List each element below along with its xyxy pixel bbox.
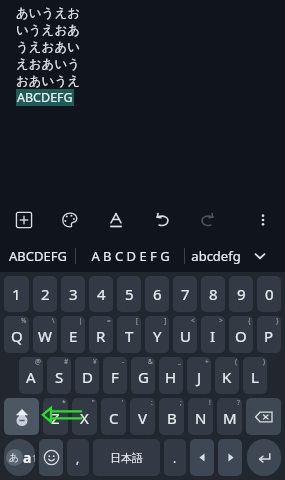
button[interactable]: : — [130, 398, 155, 435]
staticText: あいうえお — [16, 5, 80, 21]
staticText: { — [248, 316, 251, 325]
staticText: K — [222, 367, 232, 387]
button[interactable]: + — [187, 357, 211, 394]
button[interactable]: Move cursor left — [190, 439, 214, 476]
staticText: < — [191, 316, 195, 325]
button[interactable]: @ — [19, 357, 43, 394]
button[interactable]: * — [43, 398, 68, 435]
button[interactable]: Undo — [148, 206, 176, 234]
button[interactable]: < — [173, 316, 197, 353]
staticText: % — [21, 316, 27, 325]
button[interactable]: 5 — [117, 276, 141, 312]
button[interactable]: - — [103, 357, 127, 394]
button[interactable]: 0 — [257, 276, 281, 312]
button[interactable]: Redo — [194, 206, 222, 234]
button[interactable]: _ — [159, 357, 183, 394]
button[interactable]: ' — [101, 398, 126, 435]
button[interactable]: Expand suggestions — [247, 240, 273, 272]
staticText: いうえおあ — [16, 22, 80, 38]
button[interactable]: 8 — [201, 276, 225, 312]
button[interactable]: \ — [33, 316, 57, 353]
button[interactable]: | — [61, 316, 85, 353]
button[interactable]: 日本語 — [93, 439, 160, 476]
staticText: 2 — [41, 284, 50, 304]
button[interactable]: 1 — [4, 276, 29, 312]
button[interactable]: ) — [243, 357, 267, 394]
button[interactable]: Enter — [247, 439, 281, 476]
staticText: \ — [52, 316, 55, 325]
staticText: A — [26, 367, 36, 387]
button[interactable]: > — [201, 316, 225, 353]
button[interactable]: ? — [217, 398, 242, 435]
staticText: ABCDEFG — [9, 247, 67, 265]
staticText: M — [223, 408, 237, 428]
button[interactable]: 4 — [89, 276, 113, 312]
button[interactable]: } — [257, 316, 281, 353]
staticText: , — [76, 450, 80, 466]
staticText: T — [125, 326, 134, 346]
staticText: | — [79, 316, 83, 325]
button[interactable]: 9 — [229, 276, 253, 312]
staticText: X — [80, 408, 89, 428]
button[interactable]: { — [229, 316, 253, 353]
staticText: R — [96, 326, 106, 346]
staticText: ' — [122, 398, 124, 407]
button[interactable]: abcdefg — [185, 240, 247, 272]
staticText: Q — [11, 326, 23, 346]
staticText: ] — [164, 316, 167, 325]
button[interactable]: = — [89, 316, 113, 353]
button[interactable]: More options — [249, 206, 277, 234]
button[interactable]: " — [72, 398, 97, 435]
button[interactable]: 7 — [173, 276, 197, 312]
button[interactable]: ! — [188, 398, 213, 435]
staticText: @ — [35, 357, 41, 366]
button[interactable]: Emoji — [39, 439, 63, 476]
button[interactable]: Insert — [10, 206, 38, 234]
button[interactable]: Text format — [102, 206, 130, 234]
staticText: } — [276, 316, 279, 325]
button[interactable]: [ — [117, 316, 141, 353]
staticText: V — [138, 408, 148, 428]
staticText: C — [109, 408, 119, 428]
staticText: 8 — [209, 284, 218, 304]
button[interactable]: & — [131, 357, 155, 394]
button[interactable]: # — [47, 357, 71, 394]
staticText: 9 — [237, 284, 246, 304]
button[interactable]: ( — [215, 357, 239, 394]
button[interactable]: ; — [159, 398, 184, 435]
staticText: N — [195, 408, 207, 428]
staticText: ; — [180, 398, 182, 407]
staticText: D — [82, 367, 93, 387]
staticText: ( — [235, 357, 237, 366]
button[interactable]: ] — [145, 316, 169, 353]
staticText: > — [219, 316, 223, 325]
button[interactable]: あ — [4, 439, 35, 476]
button[interactable]: 3 — [61, 276, 85, 312]
staticText: & — [148, 357, 153, 366]
button[interactable]: A B C D E F G — [76, 240, 184, 272]
button[interactable]: Caps lock — [4, 398, 39, 435]
button[interactable]: ¥ — [75, 357, 99, 394]
staticText: G — [138, 367, 149, 387]
staticText: # — [64, 357, 69, 366]
button[interactable]: Move cursor right — [218, 439, 242, 476]
staticText: P — [264, 326, 274, 346]
staticText: J — [197, 367, 202, 387]
button[interactable]: , — [67, 439, 89, 476]
staticText: abcdefg — [191, 247, 241, 265]
staticText: [ — [136, 316, 139, 325]
button[interactable]: Color palette — [56, 206, 84, 234]
staticText: あ — [9, 451, 20, 464]
button[interactable]: . — [164, 439, 186, 476]
button[interactable]: 2 — [33, 276, 57, 312]
button[interactable]: ABCDEFG — [0, 240, 75, 272]
button[interactable]: Backspace — [246, 398, 281, 435]
staticText: ! — [209, 398, 211, 407]
staticText: S — [55, 367, 64, 387]
staticText: Y — [153, 326, 162, 346]
staticText: 7 — [181, 284, 190, 304]
staticText: H — [165, 367, 177, 387]
button[interactable]: 6 — [145, 276, 169, 312]
button[interactable]: % — [4, 316, 29, 353]
